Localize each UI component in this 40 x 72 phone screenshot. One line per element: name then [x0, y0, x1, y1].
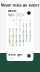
staticText: 7: [12, 28, 14, 32]
staticText: Never miss an event: [0, 2, 39, 8]
staticText: 10:00 AM: [8, 57, 14, 59]
staticText: 21: [12, 36, 14, 43]
staticText: 20: [9, 36, 11, 43]
staticText: F: [26, 19, 27, 22]
staticText: 16: [19, 31, 21, 38]
staticText: 12: [29, 26, 31, 33]
staticText: 25: [26, 36, 28, 43]
staticText: 18: [26, 31, 28, 38]
staticText: 6: [9, 28, 11, 32]
staticText: 14: [12, 31, 14, 38]
staticText: 30: [19, 40, 21, 47]
staticText: 31: [22, 40, 24, 47]
staticText: 3: [22, 24, 24, 27]
staticText: 17: [22, 31, 24, 38]
staticText: 8: [16, 28, 18, 32]
staticText: 9: [19, 28, 21, 32]
staticText: 27: [9, 40, 11, 47]
staticText: Team sync: [8, 53, 22, 56]
staticText: 2: [19, 24, 21, 27]
staticText: 10: [22, 26, 24, 33]
staticText: March 2024: [8, 13, 24, 17]
staticText: 22: [16, 36, 18, 43]
staticText: 15: [16, 31, 18, 38]
staticText: 11: [26, 26, 28, 33]
staticText: Events: [8, 9, 16, 13]
staticText: 28: [12, 40, 14, 47]
staticText: S: [9, 19, 10, 22]
staticText: 24: [22, 36, 24, 43]
staticText: 13: [9, 31, 11, 38]
staticText: 29: [16, 40, 18, 47]
staticText: 23: [19, 36, 21, 43]
staticText: 5: [29, 24, 31, 27]
staticText: 19: [29, 31, 31, 38]
staticText: S: [30, 19, 31, 22]
staticText: 26: [29, 36, 31, 43]
staticText: 1: [16, 24, 18, 27]
staticText: W: [19, 19, 21, 22]
staticText: 4: [26, 24, 28, 27]
staticText: M: [12, 19, 14, 22]
